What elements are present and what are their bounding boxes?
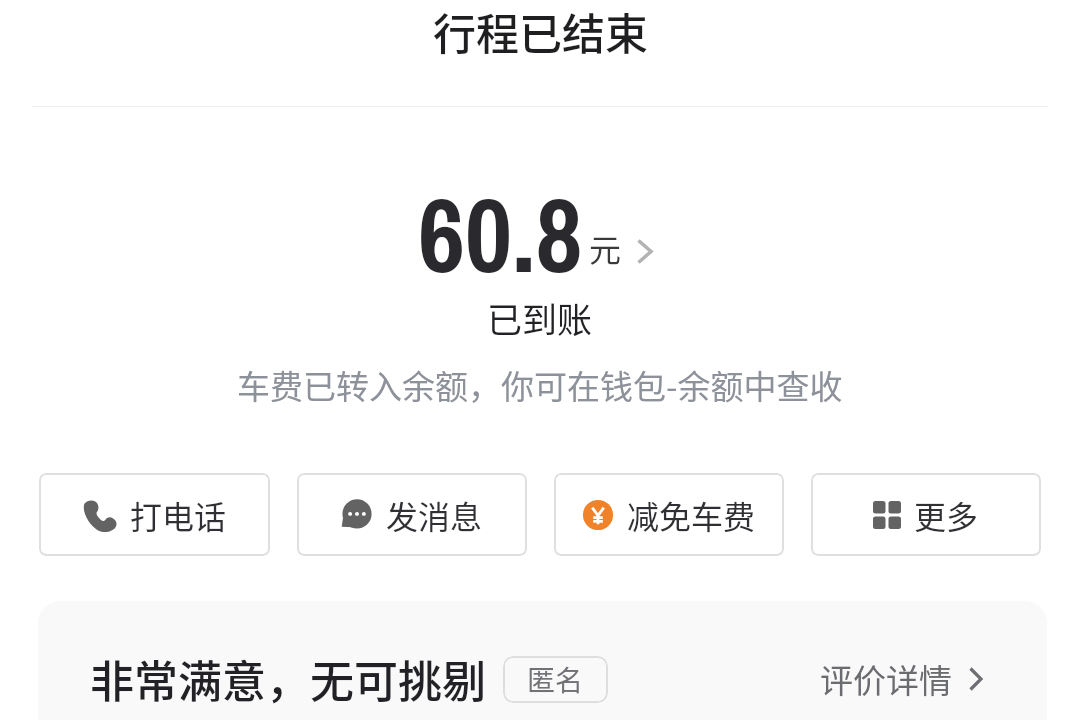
button[interactable]: 更多 [811, 473, 1041, 556]
staticText: 车费已转入余额，你可在钱包-余额中查收 [237, 361, 843, 406]
staticText: 元 [589, 225, 622, 271]
button[interactable]: 减免车费 [554, 473, 784, 556]
button[interactable]: 60.8 [0, 165, 1075, 315]
staticText: 更多 [914, 492, 979, 538]
staticText: 行程已结束 [433, 0, 648, 60]
staticText: 评价详情 [820, 655, 952, 703]
staticText: 非常满意，无可挑剔 [90, 647, 486, 711]
staticText: 匿名 [527, 659, 584, 700]
staticText: 发消息 [386, 492, 483, 538]
staticText: 60.8 [418, 165, 583, 304]
staticText: 打电话 [130, 492, 227, 538]
button[interactable]: 非常满意，无可挑剔 [38, 601, 1047, 720]
button[interactable]: 打电话 [39, 473, 270, 556]
button[interactable]: 发消息 [297, 473, 527, 556]
staticText: 已到账 [487, 292, 593, 337]
staticText: 减免车费 [627, 492, 756, 538]
